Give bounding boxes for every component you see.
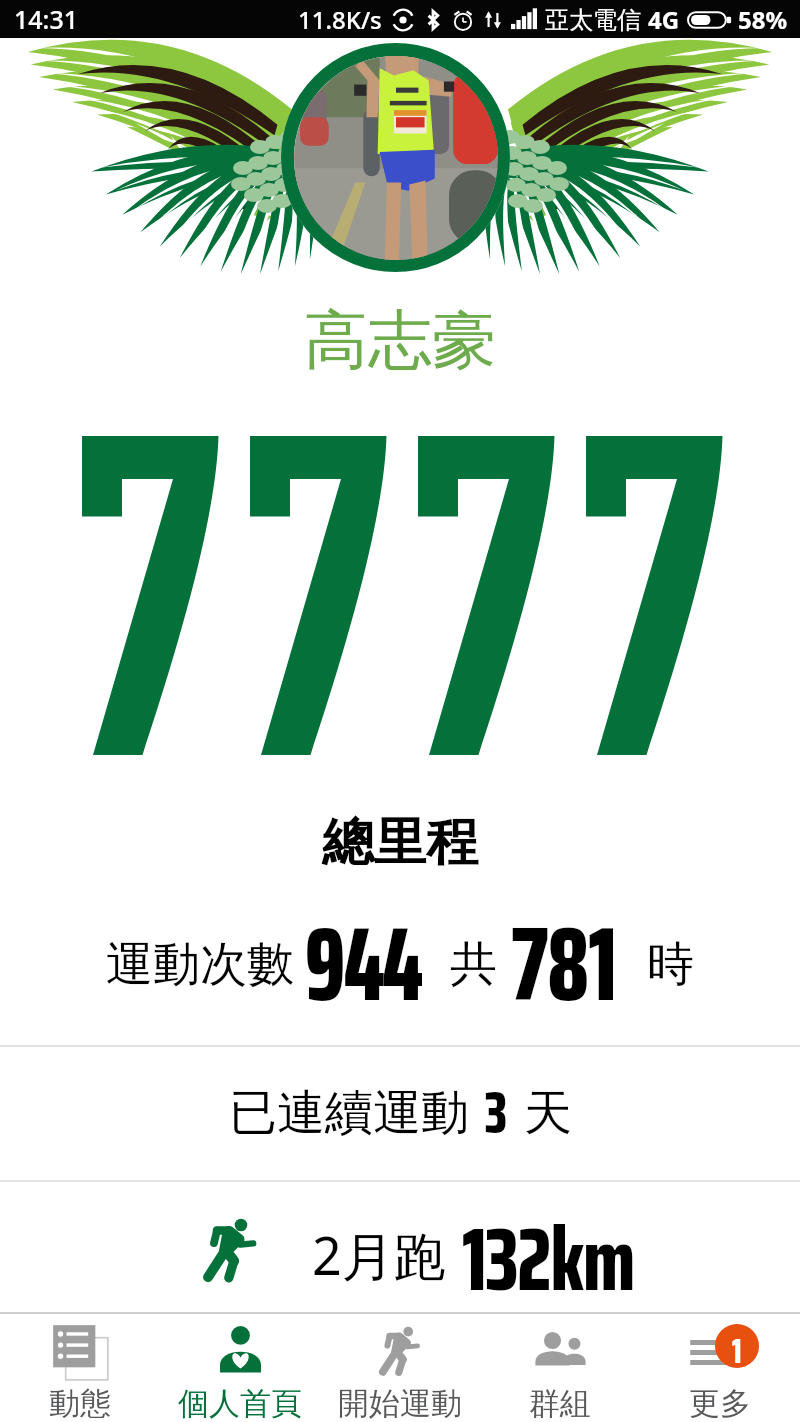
other: 更多: [689, 1324, 751, 1386]
button[interactable]: 動態: [0, 1314, 160, 1422]
button[interactable]: 開始運動: [320, 1314, 480, 1422]
button[interactable]: 2月跑: [0, 1181, 800, 1312]
staticText: 11.8K/s: [298, 3, 382, 36]
staticText: 2月跑: [312, 1219, 446, 1290]
staticText: 共: [450, 935, 497, 994]
staticText: 時: [647, 935, 694, 994]
button[interactable]: 群組: [480, 1314, 640, 1422]
button[interactable]: 已連續運動: [0, 1046, 800, 1180]
staticText: 動態: [49, 1384, 111, 1422]
staticText: 132km: [462, 1189, 635, 1320]
staticText: 高志豪: [304, 300, 496, 381]
staticText: 總里程: [322, 810, 478, 876]
staticText: 3: [485, 1065, 508, 1159]
staticText: 781: [511, 882, 617, 1032]
staticText: 58%: [738, 3, 788, 36]
staticText: 已連續運動: [229, 1083, 469, 1143]
staticText: 亞太電信: [545, 5, 641, 35]
staticText: 944: [305, 882, 422, 1032]
button[interactable]: 更多: [640, 1314, 800, 1422]
staticText: 開始運動: [338, 1384, 462, 1422]
button[interactable]: 個人首頁: [160, 1314, 320, 1422]
staticText: 1: [732, 1324, 742, 1368]
staticText: 天: [524, 1083, 572, 1143]
staticText: 群組: [529, 1384, 591, 1422]
staticText: 4G: [648, 3, 680, 36]
staticText: 14:31: [14, 2, 79, 36]
staticText: 更多: [689, 1384, 751, 1422]
staticText: 運動次數: [106, 935, 294, 994]
staticText: 個人首頁: [178, 1384, 302, 1422]
